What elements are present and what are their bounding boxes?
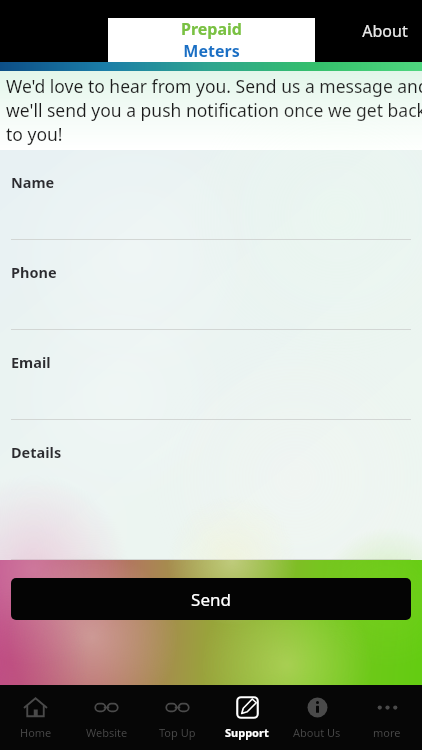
staticText: Home xyxy=(20,725,52,740)
staticText: Email xyxy=(11,352,51,372)
button[interactable]: Top Up xyxy=(142,685,212,750)
button[interactable]: Website xyxy=(71,685,142,750)
button[interactable]: About xyxy=(362,20,408,42)
staticText: About Us xyxy=(293,725,341,740)
button[interactable]: Name xyxy=(0,150,422,240)
staticText: We'd love to hear from you. Send us a me… xyxy=(6,74,422,146)
staticText: Support xyxy=(225,725,269,740)
staticText: About xyxy=(362,20,408,42)
button[interactable]: About Us xyxy=(282,685,352,750)
staticText: Send xyxy=(191,588,231,611)
staticText: Prepaid xyxy=(181,18,242,40)
button[interactable]: Phone xyxy=(0,240,422,330)
button[interactable]: Prepaid Meters home xyxy=(108,18,315,62)
button[interactable]: Email xyxy=(0,330,422,420)
staticText: Name xyxy=(11,172,55,192)
staticText: Meters xyxy=(183,40,240,62)
button[interactable]: more xyxy=(352,685,422,750)
staticText: Phone xyxy=(11,262,57,282)
staticText: more xyxy=(373,725,401,740)
button[interactable]: Send xyxy=(11,578,411,620)
button[interactable]: Home xyxy=(0,685,71,750)
button[interactable]: Support xyxy=(212,685,282,750)
staticText: Details xyxy=(11,442,62,462)
staticText: Website xyxy=(86,725,128,740)
button[interactable]: Details xyxy=(0,420,422,560)
staticText: Top Up xyxy=(159,725,196,740)
